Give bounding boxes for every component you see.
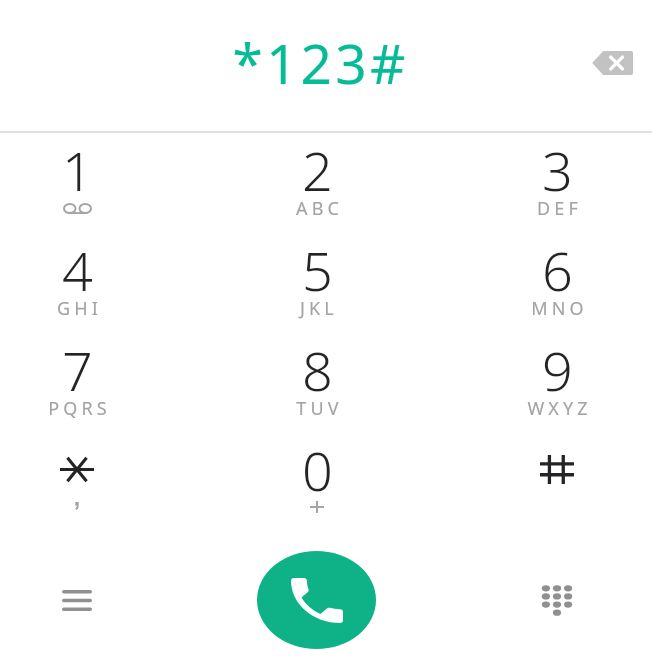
- staticText: ABC: [296, 196, 343, 221]
- staticText: 4: [62, 233, 93, 307]
- staticText: 7: [62, 333, 93, 407]
- button[interactable]: Key 4: [0, 221, 197, 321]
- button[interactable]: Key 2: [197, 121, 437, 221]
- staticText: 1: [62, 133, 93, 207]
- button[interactable]: Dialpad: [497, 540, 617, 660]
- staticText: *123#: [232, 25, 409, 100]
- button[interactable]: Key #: [437, 421, 652, 521]
- staticText: PQRS: [48, 396, 111, 421]
- button[interactable]: Key 8: [197, 321, 437, 421]
- staticText: MNO: [531, 296, 588, 321]
- button[interactable]: Key 5: [197, 221, 437, 321]
- staticText: 0: [302, 433, 333, 507]
- button[interactable]: Call: [257, 551, 376, 649]
- button[interactable]: Key 0: [197, 421, 437, 521]
- staticText: 3: [542, 133, 573, 207]
- button[interactable]: Key 3: [437, 121, 652, 221]
- staticText: TUV: [296, 396, 343, 421]
- button[interactable]: Key *: [0, 421, 197, 521]
- staticText: 5: [302, 233, 333, 307]
- staticText: 2: [302, 133, 333, 207]
- staticText: DEF: [537, 196, 582, 221]
- staticText: WXYZ: [527, 396, 592, 421]
- button[interactable]: Key 9: [437, 321, 652, 421]
- button[interactable]: Backspace: [583, 34, 641, 92]
- button[interactable]: Menu: [17, 540, 137, 660]
- staticText: 9: [542, 333, 573, 407]
- staticText: GHI: [57, 296, 102, 321]
- button[interactable]: Key 1: [0, 121, 197, 221]
- staticText: 6: [542, 233, 573, 307]
- button[interactable]: Key 7: [0, 321, 197, 421]
- button[interactable]: Key 6: [437, 221, 652, 321]
- staticText: 8: [302, 333, 333, 407]
- staticText: JKL: [300, 296, 338, 321]
